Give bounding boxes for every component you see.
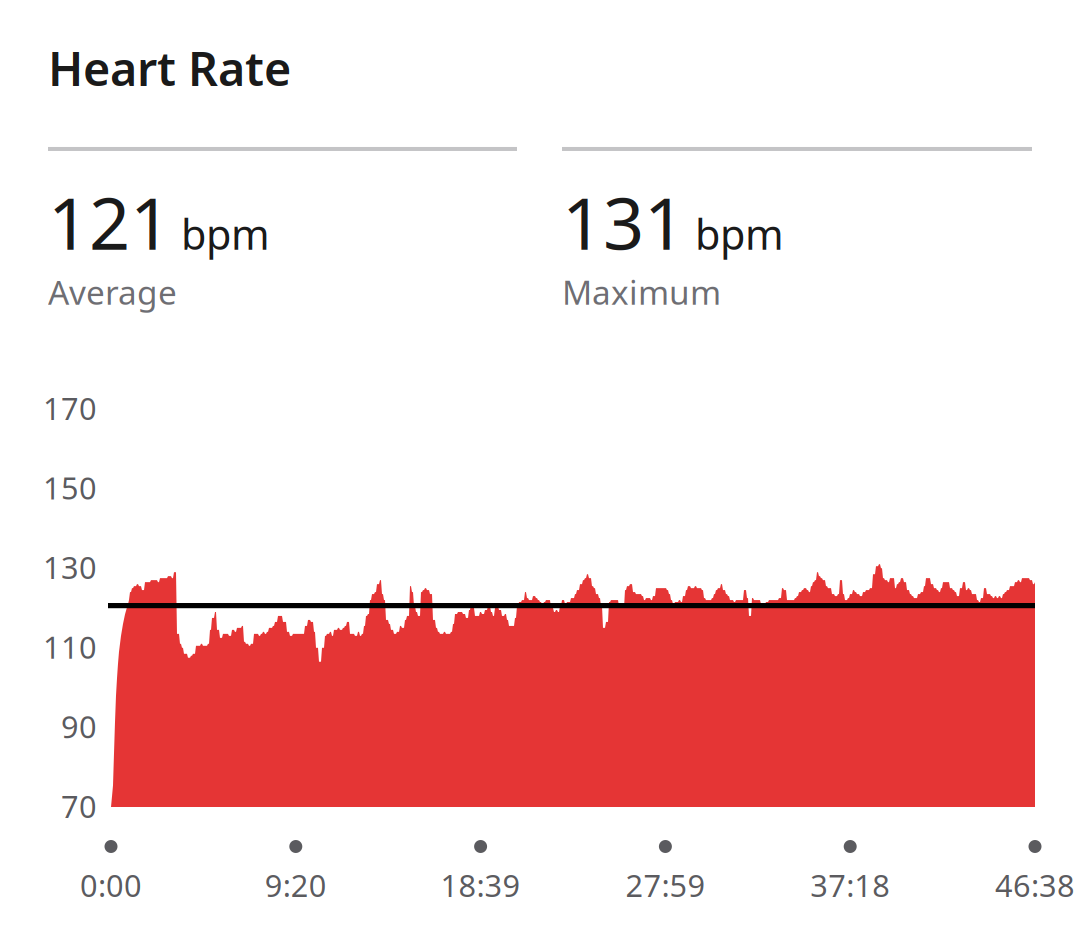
staticText: 27:59 (625, 865, 705, 905)
staticText: 37:18 (810, 865, 890, 905)
staticText: 170 (43, 388, 97, 428)
staticText: Heart Rate (48, 37, 291, 99)
staticText: 90 (61, 706, 97, 747)
staticText: 18:39 (441, 865, 521, 905)
staticText: 121 (48, 174, 171, 270)
staticText: 150 (43, 467, 97, 508)
staticText: bpm (181, 206, 270, 261)
staticText: Maximum (562, 270, 721, 314)
staticText: Average (48, 270, 177, 314)
staticText: 131 (562, 174, 685, 270)
staticText: 70 (61, 786, 97, 826)
button[interactable]: 131 (562, 147, 1032, 314)
staticText: 130 (43, 547, 97, 587)
staticText: 110 (43, 626, 97, 667)
staticText: 9:20 (265, 865, 327, 905)
staticText: 46:38 (995, 865, 1075, 905)
button[interactable]: Heart rate chart (0, 0, 1080, 952)
staticText: 0:00 (80, 865, 142, 905)
staticText: bpm (695, 206, 784, 261)
button[interactable]: 121 (48, 147, 517, 314)
